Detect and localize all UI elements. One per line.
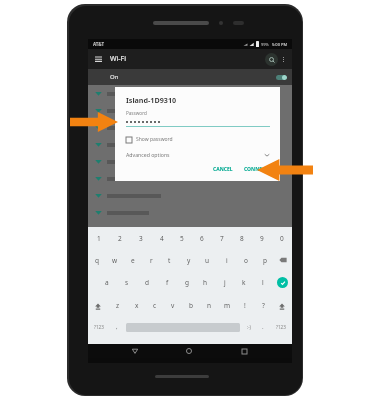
button[interactable] (88, 102, 292, 119)
button[interactable]: d (137, 271, 157, 294)
staticText: 7 (220, 234, 224, 243)
button[interactable]: CANCEL (210, 164, 236, 175)
button[interactable]: m (218, 294, 236, 317)
button[interactable]: On (88, 69, 292, 85)
button[interactable]: Enter (272, 271, 292, 294)
button[interactable]: 3 (130, 227, 151, 249)
button[interactable]: 6 (192, 227, 212, 249)
button[interactable]: 5 (172, 227, 192, 249)
staticText: 6 (200, 234, 204, 243)
button[interactable]: Shift (88, 294, 108, 317)
button[interactable]: z (108, 294, 127, 317)
staticText: o (244, 256, 248, 265)
button[interactable]: w (106, 249, 124, 271)
button[interactable]: More options (278, 54, 289, 65)
button[interactable]: a (97, 271, 117, 294)
button[interactable]: Show password (126, 136, 173, 143)
button[interactable] (88, 187, 292, 204)
staticText: , (116, 323, 118, 331)
button[interactable]: Menu (92, 53, 105, 66)
button[interactable]: :-) (242, 317, 256, 337)
button[interactable]: ?123 (88, 317, 110, 337)
staticText: 99% (261, 42, 269, 47)
button[interactable]: 4 (151, 227, 172, 249)
button[interactable]: i (217, 249, 236, 271)
staticText: x (135, 301, 139, 310)
button[interactable]: Advanced options (126, 151, 270, 158)
button[interactable] (88, 119, 292, 136)
button[interactable]: Shift (272, 294, 292, 317)
button[interactable]: Backspace (274, 249, 292, 271)
staticText: 8 (240, 234, 244, 243)
button[interactable]: 2 (109, 227, 130, 249)
button[interactable]: 8 (232, 227, 252, 249)
staticText: 9 (260, 234, 264, 243)
button[interactable]: p (255, 249, 274, 271)
staticText: n (207, 301, 212, 310)
button[interactable]: x (127, 294, 146, 317)
button[interactable] (126, 121, 270, 123)
button[interactable]: s (117, 271, 137, 294)
button[interactable]: ! (236, 294, 254, 317)
button[interactable]: ?123 (270, 317, 292, 337)
button[interactable]: g (177, 271, 196, 294)
staticText: s (125, 278, 129, 287)
staticText: d (145, 278, 149, 287)
button[interactable]: Back (128, 344, 142, 358)
staticText: Advanced options (126, 151, 170, 158)
button[interactable]: j (215, 271, 234, 294)
button[interactable]: h (196, 271, 215, 294)
button[interactable]: y (179, 249, 198, 271)
staticText: b (189, 301, 193, 310)
button[interactable] (88, 170, 292, 187)
button[interactable]: v (164, 294, 182, 317)
staticText: Island-1D9310 (126, 95, 177, 105)
button[interactable]: 7 (212, 227, 232, 249)
staticText: 5 (180, 234, 184, 243)
button[interactable] (88, 85, 292, 102)
button[interactable]: e (124, 249, 142, 271)
button[interactable]: u (198, 249, 217, 271)
button[interactable] (88, 204, 292, 221)
staticText: 2 (118, 234, 122, 243)
button[interactable]: CONNECT (241, 164, 272, 175)
button[interactable]: n (200, 294, 218, 317)
button[interactable]: f (157, 271, 177, 294)
button[interactable]: Recent apps (237, 344, 251, 358)
staticText: ?123 (276, 324, 286, 330)
button[interactable]: Home (182, 344, 196, 358)
staticText: CONNECT (244, 166, 269, 173)
staticText: 3 (139, 234, 143, 243)
staticText: m (224, 301, 231, 310)
staticText: 5:00 PM (272, 42, 288, 47)
button[interactable]: ? (254, 294, 272, 317)
staticText: j (224, 278, 226, 287)
staticText: e (131, 256, 135, 265)
staticText: l (262, 278, 264, 287)
button[interactable]: 1 (88, 227, 109, 249)
staticText: ? (262, 301, 265, 310)
staticText: 4 (160, 234, 164, 243)
button[interactable]: 9 (252, 227, 272, 249)
staticText: z (116, 301, 120, 310)
button[interactable]: q (88, 249, 106, 271)
button[interactable]: b (182, 294, 200, 317)
button[interactable]: 0 (272, 227, 292, 249)
button[interactable] (88, 136, 292, 153)
button[interactable]: , (110, 317, 124, 337)
button[interactable]: l (253, 271, 272, 294)
staticText: w (112, 256, 118, 265)
button[interactable]: k (234, 271, 253, 294)
button[interactable] (88, 153, 292, 170)
button[interactable]: c (146, 294, 164, 317)
staticText: Wi-Fi (110, 54, 127, 64)
staticText: ?123 (94, 324, 104, 330)
button[interactable]: Search (265, 53, 278, 66)
staticText: i (226, 256, 228, 265)
staticText: t (168, 256, 171, 265)
button[interactable]: t (160, 249, 179, 271)
button[interactable]: o (236, 249, 255, 271)
button[interactable]: r (142, 249, 160, 271)
